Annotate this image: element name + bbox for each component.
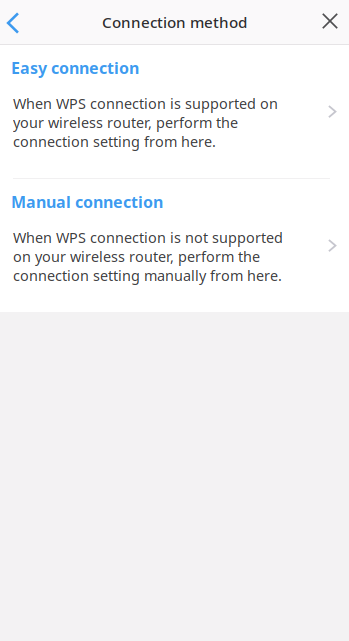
button[interactable]: Manual connection — [0, 179, 349, 312]
staticText: Connection method — [102, 12, 247, 32]
staticText: your wireless router, perform the — [13, 112, 238, 132]
staticText: Easy connection — [11, 57, 139, 79]
staticText: connection setting from here. — [13, 131, 216, 151]
staticText: on your wireless router, perform the — [13, 246, 260, 266]
button[interactable]: Easy connection — [0, 45, 349, 178]
staticText: When WPS connection is supported on — [13, 93, 278, 113]
button[interactable]: Back — [0, 0, 26, 44]
staticText: When WPS connection is not supported — [13, 227, 283, 247]
staticText: connection setting manually from here. — [13, 265, 282, 285]
button[interactable]: Close — [311, 0, 349, 44]
staticText: Manual connection — [11, 191, 163, 213]
